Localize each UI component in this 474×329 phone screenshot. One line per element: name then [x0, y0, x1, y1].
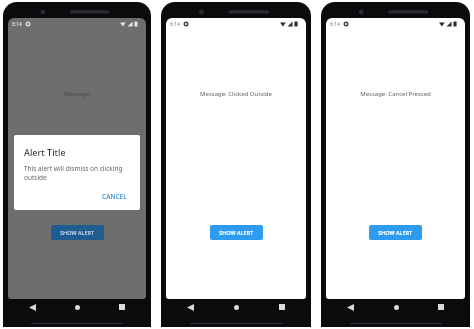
- button[interactable]: Recent apps: [434, 300, 448, 314]
- button[interactable]: Home: [70, 300, 84, 314]
- staticText: 6:14: [170, 21, 180, 28]
- button[interactable]: Recent apps: [275, 300, 289, 314]
- staticText: SHOW ALERT: [378, 229, 413, 236]
- button[interactable]: Home: [229, 300, 243, 314]
- staticText: Message: Cancel Pressed: [360, 90, 431, 98]
- button[interactable]: Back: [183, 300, 197, 314]
- staticText: This alert will dismiss on clicking outs…: [24, 164, 132, 182]
- button[interactable]: Back: [25, 300, 39, 314]
- staticText: SHOW ALERT: [60, 229, 95, 236]
- staticText: SHOW ALERT: [219, 229, 254, 236]
- staticText: Alert Title: [24, 146, 66, 158]
- staticText: CANCEL: [102, 192, 127, 201]
- button[interactable]: SHOW ALERT: [51, 225, 104, 240]
- staticText: 6:14: [12, 21, 22, 28]
- staticText: Message:: [64, 90, 91, 98]
- button[interactable]: SHOW ALERT: [369, 225, 422, 240]
- button[interactable]: Recent apps: [115, 300, 129, 314]
- button[interactable]: Back: [343, 300, 357, 314]
- button[interactable]: Home: [389, 300, 403, 314]
- button[interactable]: CANCEL: [97, 189, 132, 204]
- staticText: Message: Clicked Outside: [200, 90, 272, 98]
- button[interactable]: SHOW ALERT: [210, 225, 263, 240]
- staticText: 6:14: [330, 21, 340, 28]
